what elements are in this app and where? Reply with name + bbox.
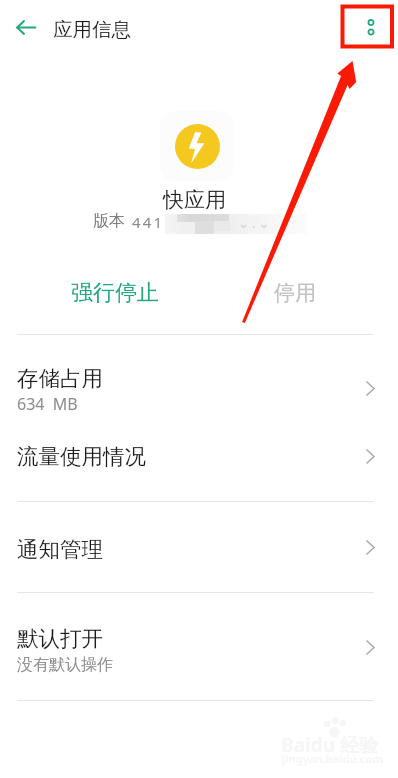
staticText: 应用信息 <box>53 17 131 42</box>
button[interactable]: More options <box>352 6 390 46</box>
staticText: 通知管理 <box>17 536 103 563</box>
button[interactable]: 默认打开 <box>0 593 398 700</box>
staticText: 快应用 <box>163 187 226 213</box>
button[interactable]: 流量使用情况 <box>0 424 398 501</box>
staticText: 停用 <box>274 280 316 306</box>
staticText: 默认打开 <box>17 625 103 652</box>
button[interactable]: 存储占用 <box>0 336 398 424</box>
button[interactable]: 通知管理 <box>0 502 398 591</box>
button[interactable]: 停用 <box>230 272 360 314</box>
staticText: 没有默认操作 <box>17 655 113 675</box>
staticText: 版本 <box>93 211 125 231</box>
staticText: jingyan.baidu.com <box>282 751 384 766</box>
staticText: 强行停止 <box>71 279 159 307</box>
staticText: Baidu 经验 <box>281 732 378 758</box>
staticText: 441 <box>132 212 165 232</box>
staticText: 存储占用 <box>17 365 103 392</box>
staticText: 634 MB <box>17 393 78 415</box>
staticText: 流量使用情况 <box>17 443 146 470</box>
staticText: ⌄.⌄ <box>238 214 273 232</box>
button[interactable]: 强行停止 <box>20 272 210 314</box>
button[interactable]: Back <box>3 5 48 50</box>
